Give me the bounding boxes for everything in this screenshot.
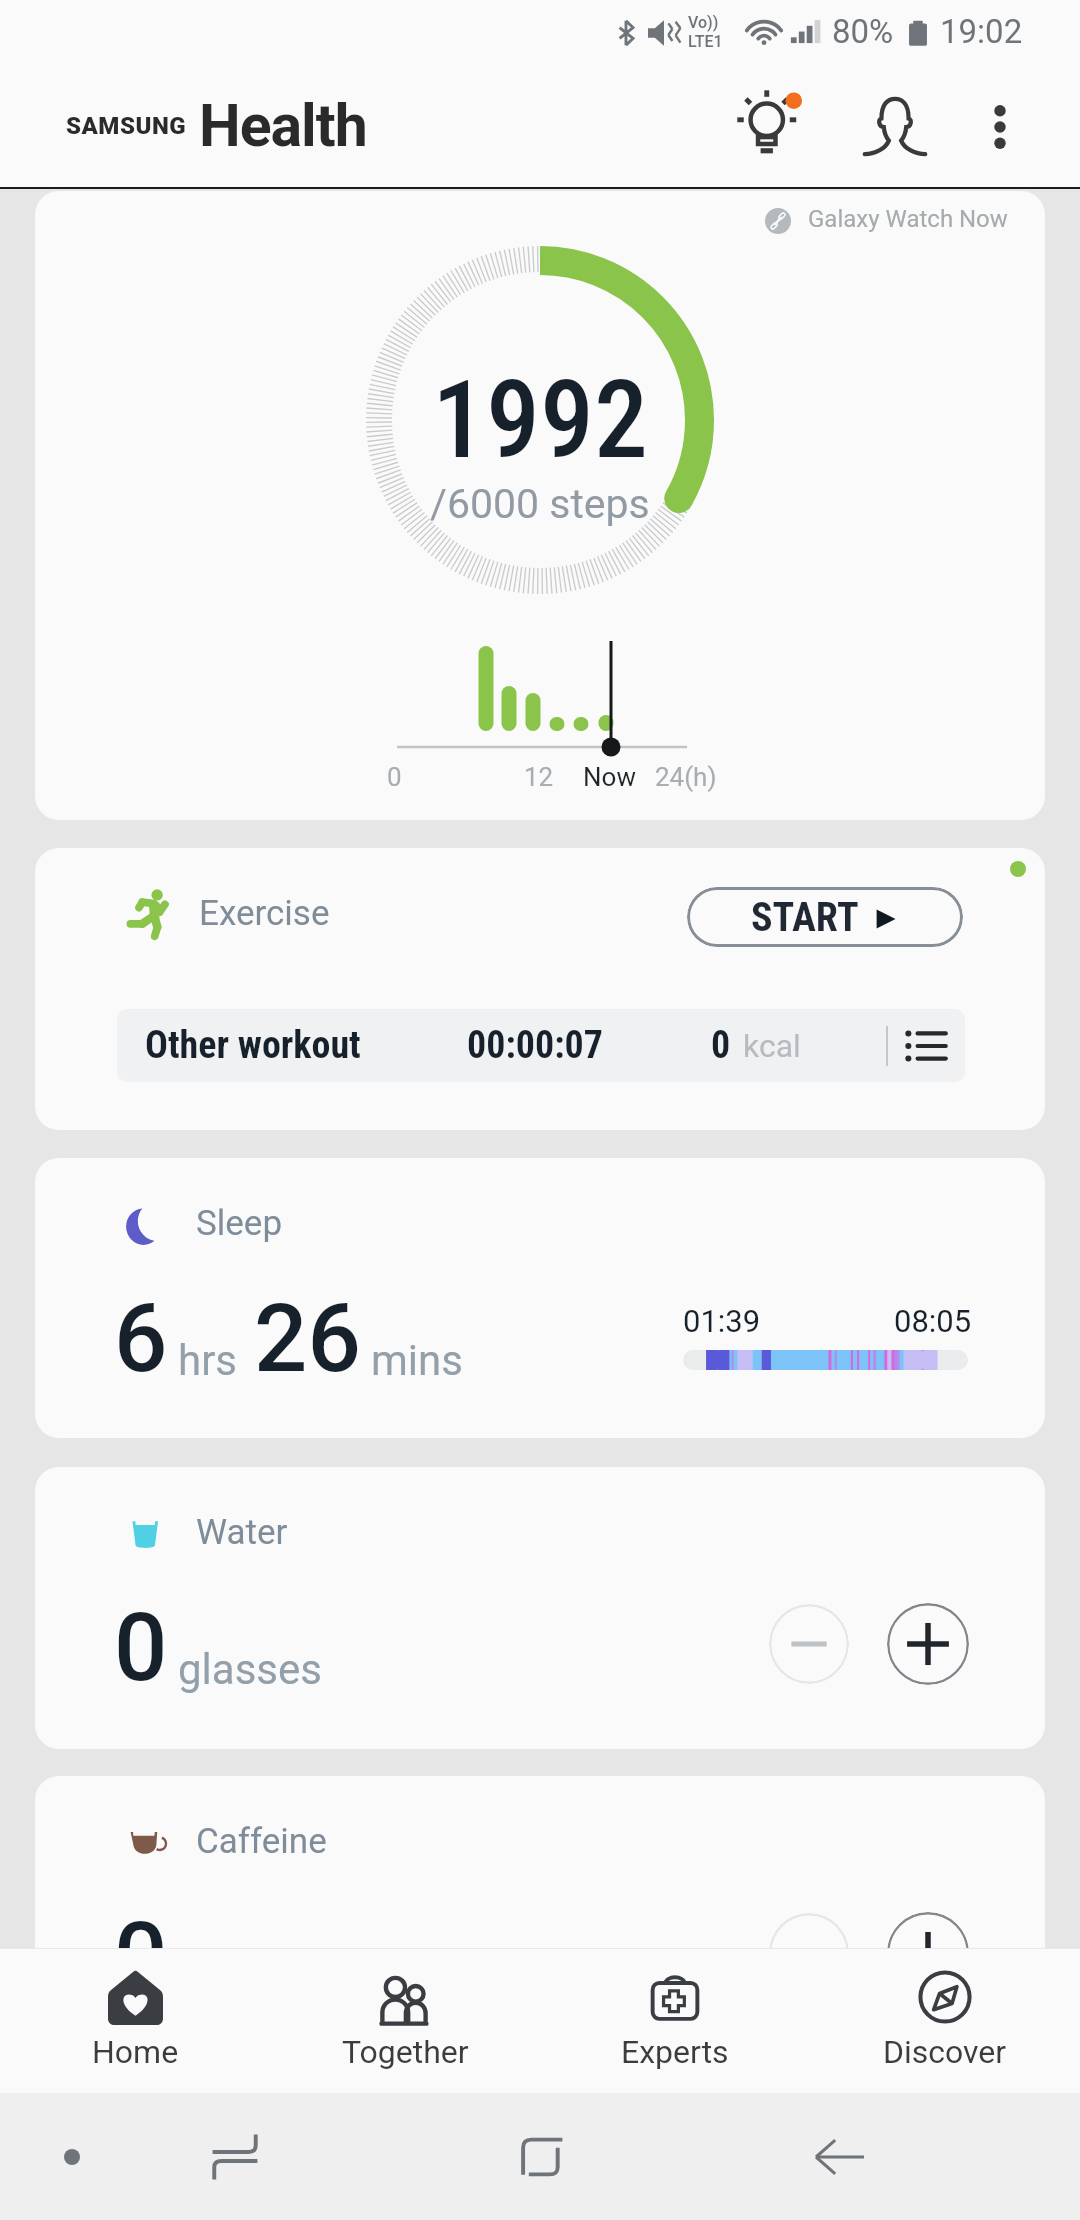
staticText: 24(h): [655, 762, 717, 792]
staticText: 6: [114, 1284, 168, 1394]
staticText: Sleep: [196, 1203, 283, 1244]
staticText: 1992: [432, 357, 648, 484]
button[interactable]: Recents: [190, 2112, 280, 2202]
staticText: Health: [199, 91, 367, 160]
button[interactable]: Other workout: [117, 1009, 965, 1082]
staticText: 26: [254, 1284, 361, 1394]
button[interactable]: Tips: [720, 77, 820, 177]
staticText: START: [751, 894, 859, 941]
staticText: 0: [711, 1023, 731, 1068]
button[interactable]: Sleep: [35, 1158, 1045, 1438]
button[interactable]: Caffeine: [35, 1776, 1045, 1948]
staticText: Other workout: [145, 1023, 361, 1068]
staticText: 0: [114, 1902, 168, 1948]
staticText: Exercise: [199, 893, 330, 934]
button[interactable]: Experts: [540, 1948, 810, 2093]
staticText: Now: [583, 762, 636, 792]
button[interactable]: Increase Water: [887, 1603, 969, 1685]
button[interactable]: START: [687, 887, 963, 947]
staticText: 00:00:07: [467, 1023, 604, 1068]
button[interactable]: Discover: [810, 1948, 1080, 2093]
staticText: hrs: [178, 1336, 238, 1385]
staticText: Discover: [883, 2033, 1007, 2071]
button[interactable]: Water: [35, 1467, 1045, 1749]
button[interactable]: Galaxy Watch: [35, 191, 1045, 820]
staticText: Experts: [621, 2033, 729, 2071]
staticText: 01:39: [683, 1303, 761, 1339]
staticText: 0: [114, 1593, 168, 1703]
staticText: Now: [959, 205, 1008, 233]
staticText: Home: [92, 2033, 179, 2071]
staticText: 08:05: [894, 1303, 972, 1339]
staticText: Caffeine: [196, 1821, 327, 1862]
staticText: 12: [524, 762, 554, 792]
staticText: LTE1: [688, 32, 723, 51]
staticText: Galaxy Watch: [808, 205, 954, 233]
button[interactable]: Decrease Caffeine: [769, 1913, 849, 1948]
button[interactable]: Home: [495, 2112, 585, 2202]
staticText: Water: [196, 1512, 288, 1553]
staticText: SAMSUNG: [66, 112, 187, 140]
staticText: Together: [342, 2033, 469, 2071]
button[interactable]: Exercise: [35, 848, 1045, 1130]
button[interactable]: More options: [950, 77, 1050, 177]
button[interactable]: Profile: [845, 77, 945, 177]
staticText: mins: [371, 1336, 463, 1385]
staticText: 0: [387, 762, 402, 792]
staticText: Vo)): [688, 13, 719, 32]
button[interactable]: Decrease Water: [769, 1604, 849, 1684]
staticText: 80%: [832, 12, 894, 51]
button[interactable]: Increase Caffeine: [887, 1912, 969, 1948]
staticText: kcal: [743, 1027, 801, 1065]
staticText: 19:02: [940, 12, 1023, 51]
staticText: glasses: [178, 1645, 322, 1694]
staticText: /6000 steps: [430, 480, 650, 528]
button[interactable]: Together: [270, 1948, 540, 2093]
button[interactable]: Back: [795, 2112, 885, 2202]
button[interactable]: Home: [0, 1948, 270, 2093]
